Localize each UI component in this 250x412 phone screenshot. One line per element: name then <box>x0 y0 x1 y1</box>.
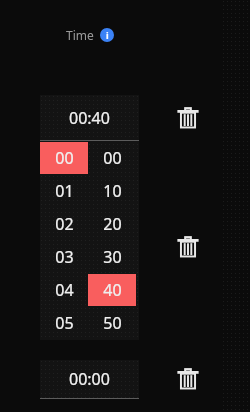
staticText: 00 <box>103 147 122 169</box>
button[interactable]: 20 <box>88 207 136 240</box>
staticText: 02 <box>55 213 74 235</box>
button[interactable]: Delete selected time <box>171 230 205 264</box>
staticText: 04 <box>55 279 74 301</box>
button[interactable]: Delete time 00:00 <box>171 362 205 396</box>
button[interactable]: 03 <box>40 240 88 273</box>
staticText: 40 <box>103 279 122 301</box>
button[interactable]: 30 <box>88 240 136 273</box>
staticText: i <box>106 29 109 41</box>
staticText: 00:00 <box>69 368 110 390</box>
button[interactable]: 00:00 <box>40 360 139 398</box>
button[interactable]: Time <box>66 27 94 43</box>
button[interactable]: 04 <box>40 273 88 306</box>
staticText: 50 <box>103 312 122 334</box>
staticText: 01 <box>55 180 74 202</box>
button[interactable]: 00 <box>40 141 88 174</box>
staticText: 00 <box>55 147 74 169</box>
button[interactable]: 50 <box>88 306 136 339</box>
button[interactable]: Delete time 00:40 <box>171 101 205 135</box>
button[interactable]: 05 <box>40 306 88 339</box>
staticText: 30 <box>103 246 122 268</box>
staticText: 05 <box>55 312 74 334</box>
staticText: 03 <box>55 246 74 268</box>
staticText: 20 <box>103 213 122 235</box>
button[interactable]: 01 <box>40 174 88 207</box>
button[interactable]: Info <box>100 28 114 42</box>
staticText: 00:40 <box>69 107 110 129</box>
staticText: 10 <box>103 180 122 202</box>
button[interactable]: 00 <box>88 141 136 174</box>
button[interactable]: 10 <box>88 174 136 207</box>
button[interactable]: 02 <box>40 207 88 240</box>
button[interactable]: 00:40 <box>40 95 139 140</box>
button[interactable]: 40 <box>88 273 136 306</box>
